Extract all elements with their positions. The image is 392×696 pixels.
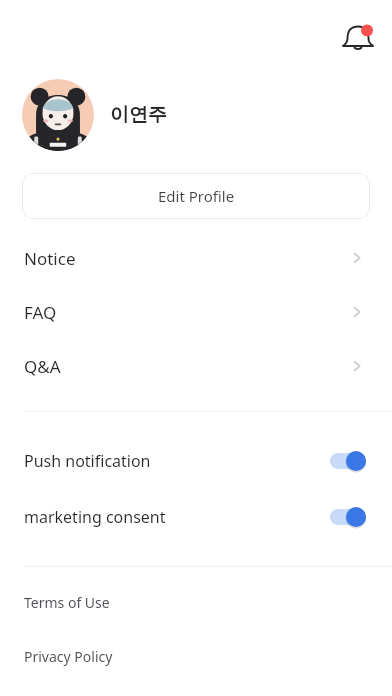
button[interactable]: Notifications [336,17,380,61]
staticText: Privacy Policy [24,647,113,666]
staticText: marketing consent [24,506,330,528]
button[interactable]: marketing consent [0,500,392,534]
button[interactable]: Notice [0,231,392,285]
staticText: Edit Profile [158,186,235,206]
staticText: Push notification [24,450,330,472]
button[interactable]: Edit Profile [22,173,370,219]
staticText: Terms of Use [24,593,110,612]
button[interactable]: Terms of Use [0,589,392,615]
button[interactable]: Push notification [0,444,392,478]
staticText: Notice [24,247,350,270]
staticText: FAQ [24,301,350,324]
button[interactable]: FAQ [0,285,392,339]
staticText: 이연주 [110,103,167,127]
button[interactable]: Privacy Policy [0,643,392,669]
button[interactable]: Q&A [0,339,392,393]
staticText: Q&A [24,355,350,378]
